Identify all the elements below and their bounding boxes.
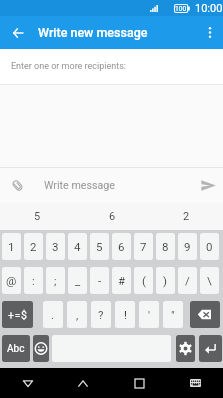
button[interactable]: " (163, 301, 183, 328)
button[interactable]: Change keyboard (167, 368, 223, 398)
button[interactable]: @ (2, 267, 21, 294)
staticText: 6 (118, 240, 125, 253)
staticText: Write new message (38, 25, 148, 40)
staticText: 4 (74, 240, 81, 253)
staticText: 2 (30, 240, 37, 253)
button[interactable]: : (24, 267, 43, 294)
staticText: : (32, 274, 35, 287)
button[interactable]: 2 (149, 203, 223, 230)
button[interactable]: 4 (68, 233, 87, 260)
staticText: +=$ (8, 309, 28, 321)
staticText: _ (75, 274, 81, 287)
staticText: 8 (162, 240, 169, 253)
button[interactable]: 8 (156, 233, 175, 260)
staticText: 10:00 (195, 2, 223, 15)
button[interactable]: _ (68, 267, 87, 294)
staticText: 0 (206, 240, 213, 253)
button[interactable]: Enter one or more recipients: (0, 49, 223, 84)
button[interactable]: Enter (199, 335, 222, 362)
button[interactable]: / (178, 267, 197, 294)
staticText: 2 (183, 210, 190, 223)
staticText: 1 (8, 240, 15, 253)
button[interactable]: 5 (0, 203, 75, 230)
staticText: 100 (175, 5, 187, 13)
button[interactable]: 0 (200, 233, 219, 260)
staticText: ( (142, 274, 146, 287)
button[interactable]: ? (91, 301, 111, 328)
staticText: 3 (52, 240, 59, 253)
staticText: \ (207, 274, 212, 287)
button[interactable]: - (90, 267, 109, 294)
button[interactable]: ! (115, 301, 135, 328)
staticText: ' (148, 308, 151, 321)
staticText: Abc (7, 343, 25, 355)
staticText: ) (163, 274, 168, 287)
button[interactable]: , (67, 301, 87, 328)
button[interactable]: ( (134, 267, 153, 294)
staticText: @ (6, 274, 17, 287)
button[interactable]: Recent apps (111, 368, 167, 398)
button[interactable]: Settings (176, 335, 195, 362)
button[interactable]: 1 (2, 233, 21, 260)
button[interactable]: Backspace (190, 301, 220, 328)
button[interactable]: ; (46, 267, 65, 294)
button[interactable]: Send (193, 168, 223, 203)
button[interactable]: Abc (2, 335, 30, 362)
staticText: ! (124, 308, 127, 321)
staticText: # (118, 274, 126, 287)
staticText: - (98, 274, 102, 287)
button[interactable]: # (112, 267, 131, 294)
button[interactable]: Back (0, 368, 55, 398)
button[interactable]: ) (156, 267, 175, 294)
staticText: 9 (184, 240, 191, 253)
staticText: 5 (96, 240, 103, 253)
button[interactable]: ' (139, 301, 159, 328)
staticText: ? (98, 308, 104, 321)
button[interactable]: . (43, 301, 63, 328)
staticText: / (185, 274, 190, 287)
button[interactable]: Emoji (33, 335, 49, 362)
button[interactable]: 3 (46, 233, 65, 260)
button[interactable]: 9 (178, 233, 197, 260)
staticText: Write message (44, 179, 115, 192)
button[interactable]: Attach file (0, 168, 35, 203)
button[interactable]: 5 (90, 233, 109, 260)
button[interactable]: More options (196, 16, 223, 49)
button[interactable]: Home (55, 368, 111, 398)
staticText: Enter one or more recipients: (11, 61, 126, 72)
staticText: " (171, 308, 175, 321)
staticText: , (76, 308, 79, 321)
button[interactable]: 7 (134, 233, 153, 260)
staticText: . (51, 308, 55, 321)
button[interactable]: 6 (112, 233, 131, 260)
staticText: 6 (109, 210, 116, 223)
button[interactable]: \ (200, 267, 219, 294)
button[interactable]: 2 (24, 233, 43, 260)
button[interactable]: Navigate up (0, 16, 35, 49)
staticText: ; (54, 274, 57, 287)
staticText: 7 (140, 240, 147, 253)
staticText: 5 (34, 210, 41, 223)
button[interactable]: 6 (75, 203, 149, 230)
button[interactable]: +=$ (2, 301, 33, 328)
